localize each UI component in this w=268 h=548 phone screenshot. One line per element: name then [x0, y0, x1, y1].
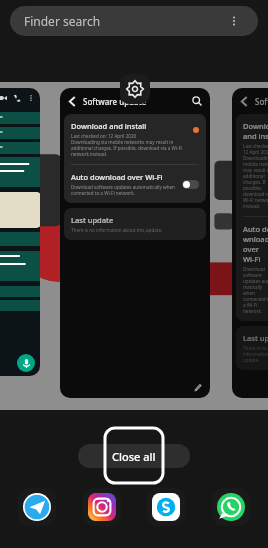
- button[interactable]: Close all: [78, 444, 190, 468]
- button[interactable]: Telegram: [18, 488, 56, 526]
- staticText: Download and install: [243, 121, 268, 141]
- staticText: Last update: [243, 333, 268, 343]
- button[interactable]: Voice message: [0, 88, 40, 376]
- button[interactable]: Auto download over Wi-Fi: [236, 217, 268, 321]
- staticText: Software update: [255, 96, 268, 107]
- staticText: Auto download over Wi-Fi: [71, 172, 163, 182]
- staticText: There is no information about this updat…: [243, 345, 268, 363]
- staticText: Auto download over Wi-Fi: [243, 224, 268, 264]
- button[interactable]: Instagram: [83, 488, 121, 526]
- button[interactable]: Last update: [64, 208, 206, 240]
- button[interactable]: Voice message: [17, 354, 35, 372]
- staticText: Download and install: [71, 121, 147, 131]
- button[interactable]: Download and install: [64, 114, 206, 164]
- staticText: Last update: [71, 215, 114, 225]
- staticText: Software update: [83, 96, 147, 107]
- other: Edit: [194, 384, 202, 392]
- button[interactable]: Finder search: [10, 6, 258, 36]
- staticText: Finder search: [24, 13, 101, 29]
- button[interactable]: WhatsApp: [212, 488, 250, 526]
- button[interactable]: Software update: [60, 88, 210, 398]
- staticText: Last checked on: 12 April 2020: [243, 143, 268, 155]
- staticText: Last checked on: 12 April 2020: [71, 133, 137, 139]
- staticText: There is no information about this updat…: [71, 227, 163, 233]
- button[interactable]: Auto download over Wi-Fi: [64, 165, 206, 203]
- button[interactable]: More options: [224, 11, 244, 31]
- staticText: Download software updates automatically …: [243, 266, 268, 314]
- staticText: Close all: [112, 449, 156, 464]
- button[interactable]: Software update: [232, 88, 268, 398]
- staticText: Downloading via mobile networks may resu…: [243, 155, 268, 209]
- button[interactable]: Download and install: [236, 114, 268, 216]
- button[interactable]: [182, 180, 199, 189]
- button[interactable]: Settings app icon: [120, 74, 150, 104]
- button[interactable]: Skype: [147, 488, 185, 526]
- button[interactable]: Last update: [236, 326, 268, 370]
- staticText: Download software updates automatically …: [71, 184, 178, 196]
- staticText: Downloading via mobile networks may resu…: [71, 139, 189, 157]
